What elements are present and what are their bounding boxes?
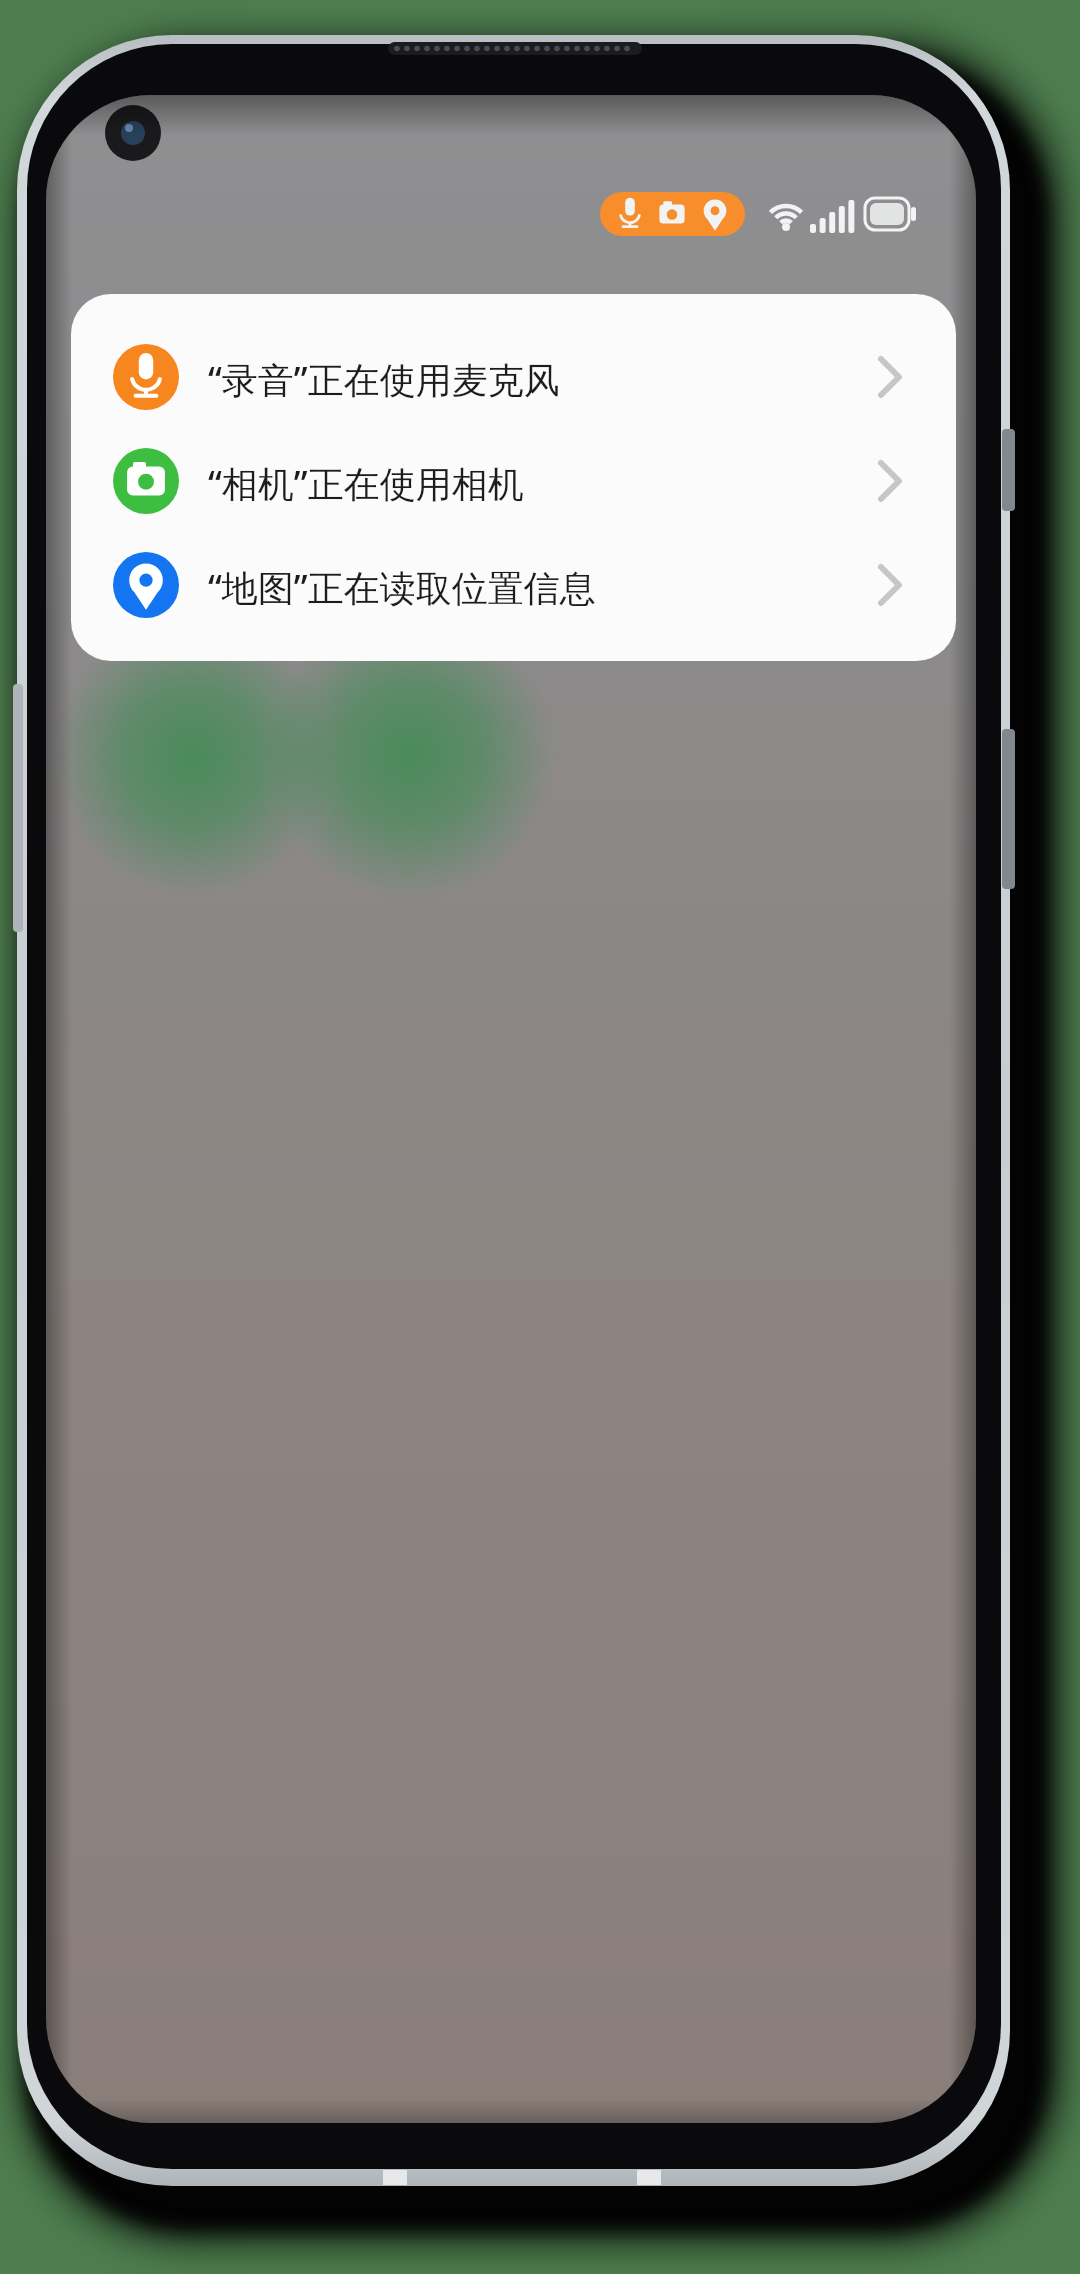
- button[interactable]: “地图”正在读取位置信息: [115, 533, 925, 637]
- staticText: “地图”正在读取位置信息: [208, 563, 596, 612]
- button[interactable]: “相机”正在使用相机: [115, 429, 925, 533]
- button[interactable]: “录音”正在使用麦克风: [115, 325, 925, 429]
- staticText: “录音”正在使用麦克风: [208, 355, 560, 404]
- staticText: “相机”正在使用相机: [208, 459, 524, 508]
